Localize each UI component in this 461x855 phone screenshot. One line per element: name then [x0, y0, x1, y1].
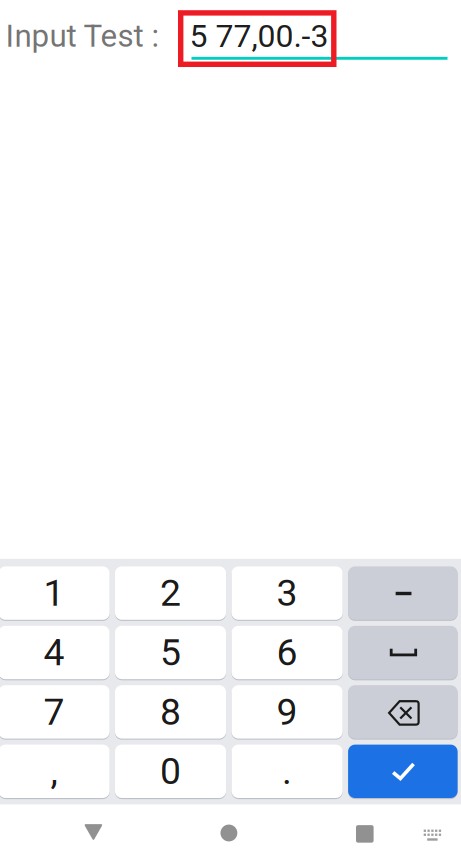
- staticText: 3: [277, 571, 298, 615]
- button[interactable]: ,: [0, 745, 110, 798]
- button[interactable]: Hide keyboard: [63, 807, 123, 855]
- staticText: Input Test :: [5, 18, 159, 54]
- button[interactable]: 6: [231, 626, 343, 679]
- staticText: 1: [44, 571, 65, 615]
- button[interactable]: 3: [231, 566, 343, 620]
- button[interactable]: Backspace: [348, 685, 458, 739]
- button[interactable]: 5: [115, 626, 226, 679]
- button[interactable]: Space: [348, 626, 458, 679]
- button[interactable]: Recent apps: [335, 809, 395, 855]
- button[interactable]: 7: [0, 685, 110, 739]
- staticText: 7: [44, 690, 65, 734]
- button[interactable]: Minus: [348, 566, 458, 620]
- staticText: 8: [160, 690, 181, 734]
- staticText: 5: [160, 631, 181, 674]
- staticText: 2: [160, 571, 181, 615]
- button[interactable]: 1: [0, 566, 110, 620]
- staticText: .: [282, 749, 292, 793]
- button[interactable]: 8: [115, 685, 226, 739]
- button[interactable]: 9: [231, 685, 343, 739]
- staticText: 5 77,00.-3: [189, 17, 328, 55]
- button[interactable]: 0: [115, 745, 226, 798]
- button[interactable]: 2: [115, 566, 226, 620]
- staticText: 6: [277, 631, 298, 674]
- button[interactable]: 4: [0, 626, 110, 679]
- button[interactable]: Switch keyboard: [410, 809, 454, 855]
- button[interactable]: Enter: [348, 745, 458, 798]
- staticText: 9: [277, 690, 298, 734]
- button[interactable]: Home: [199, 808, 259, 855]
- button[interactable]: .: [231, 745, 343, 798]
- staticText: ,: [51, 749, 58, 793]
- staticText: 0: [160, 749, 181, 793]
- staticText: 4: [44, 631, 65, 674]
